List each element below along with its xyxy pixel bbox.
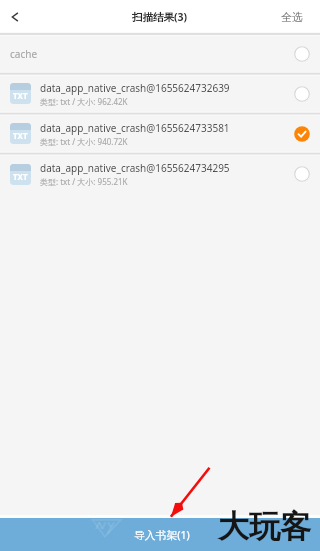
staticText: data_app_native_crash@1655624733581 <box>40 121 230 135</box>
button[interactable]: 导入书架(1) <box>0 518 320 551</box>
button[interactable]: Select <box>294 166 310 182</box>
staticText: data_app_native_crash@1655624734295 <box>40 161 230 175</box>
button[interactable]: Select <box>294 86 310 102</box>
staticText: 类型: txt / 大小: 955.21K <box>40 176 128 187</box>
staticText: TXT <box>13 90 28 101</box>
staticText: 扫描结果(3) <box>132 10 188 24</box>
button[interactable]: Selected <box>294 126 310 142</box>
button[interactable]: TXT <box>0 74 320 113</box>
staticText: TXT <box>13 130 28 141</box>
staticText: data_app_native_crash@1655624732639 <box>40 81 230 95</box>
staticText: TXT <box>13 171 28 182</box>
staticText: 类型: txt / 大小: 940.72K <box>40 136 128 147</box>
button[interactable]: TXT <box>0 114 320 153</box>
button[interactable]: Select <box>294 46 310 62</box>
button[interactable]: cache <box>0 35 320 73</box>
staticText: cache <box>10 47 38 61</box>
button[interactable]: TXT <box>0 154 320 194</box>
staticText: 导入书架(1) <box>134 527 190 542</box>
button[interactable]: Back <box>0 1 30 35</box>
staticText: 大玩客 <box>218 507 311 546</box>
staticText: 类型: txt / 大小: 962.42K <box>40 96 128 107</box>
staticText: 全选 <box>281 10 303 24</box>
button[interactable]: 全选 <box>281 1 303 35</box>
